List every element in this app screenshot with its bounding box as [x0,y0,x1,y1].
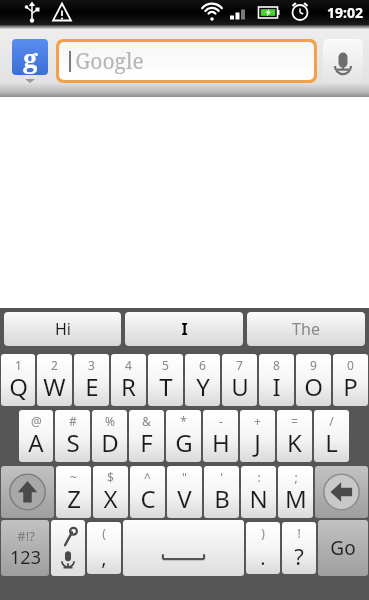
button[interactable]: 0 [333,354,368,406]
staticText: H [212,426,230,459]
staticText: Y [196,370,210,403]
button[interactable]: : [241,466,276,518]
staticText: ; [294,469,298,485]
staticText: : [257,469,261,485]
staticText: G [175,426,193,459]
button[interactable]: * [166,410,201,462]
button[interactable]: % [92,410,127,462]
staticText: A [28,426,44,459]
staticText: 3 [88,357,95,373]
button[interactable]: - [203,410,238,462]
staticText: #!? [17,527,35,545]
button[interactable]: ; [278,466,313,518]
button[interactable]: 4 [111,354,146,406]
button[interactable]: 8 [259,354,294,406]
button[interactable]: 9 [296,354,331,406]
staticText: P [343,370,358,403]
staticText: I [272,370,281,403]
button[interactable]: Voice search [323,39,363,83]
staticText: R [121,370,136,403]
staticText: M [285,482,307,515]
staticText: Q [9,370,28,403]
button[interactable]: Settings and voice input [51,520,85,576]
staticText: S [66,426,80,459]
staticText: I [181,318,188,340]
button[interactable]: ( [87,522,121,574]
staticText: N [249,482,268,515]
staticText: 8 [273,357,280,373]
button[interactable]: & [129,410,164,462]
button[interactable]: Search provider Google [6,25,54,97]
staticText: & [142,413,151,429]
staticText: * [180,413,187,429]
staticText: @ [31,413,42,429]
button[interactable]: Google [59,42,314,80]
button[interactable]: ~ [56,466,91,518]
staticText: 0 [347,357,354,373]
staticText: T [159,370,173,403]
button[interactable]: 2 [37,354,72,406]
button[interactable]: ' [204,466,239,518]
button[interactable]: Hi [4,312,121,346]
staticText: , [101,544,107,571]
button[interactable]: @ [19,410,53,462]
staticText: ^ [144,469,151,485]
staticText: 7 [236,357,243,373]
staticText: 19:02 [327,3,363,22]
staticText: + [254,413,261,429]
button[interactable]: Shift [1,466,54,518]
button[interactable]: ^ [130,466,165,518]
staticText: Z [67,482,81,515]
staticText: K [287,426,302,459]
staticText: 2 [51,357,58,373]
staticText: ! [297,525,301,541]
staticText: U [231,370,249,403]
button[interactable]: 1 [1,354,35,406]
button[interactable]: " [167,466,202,518]
button[interactable]: 3 [74,354,109,406]
button[interactable]: $ [93,466,128,518]
button[interactable]: + [240,410,275,462]
button[interactable]: #!? [1,520,49,576]
staticText: X [103,482,118,515]
button[interactable]: ! [282,522,316,574]
button[interactable]: Go [318,520,368,576]
button[interactable]: I [125,312,243,346]
staticText: . [260,544,266,571]
button[interactable]: # [55,410,90,462]
staticText: B [214,482,230,515]
staticText: $ [107,469,114,485]
staticText: The [292,318,320,340]
staticText: F [140,426,153,459]
button[interactable]: ) [246,522,280,574]
staticText: W [43,370,66,403]
button[interactable]: = [277,410,312,462]
staticText: J [254,426,261,459]
button[interactable]: / [314,410,349,462]
staticText: = [291,413,298,429]
button[interactable]: 7 [222,354,257,406]
button[interactable]: Backspace [315,466,368,518]
staticText: 9 [310,357,317,373]
staticText: E [85,370,99,403]
staticText: # [69,413,77,429]
staticText: ? [294,541,304,571]
staticText: ~ [70,469,77,485]
staticText: ' [220,469,223,485]
staticText: L [325,426,338,459]
button[interactable]: The [247,312,365,346]
staticText: / [329,413,334,429]
staticText: % [105,413,115,429]
staticText: ) [261,525,265,541]
staticText: 4 [125,357,132,373]
staticText: 123 [10,545,41,570]
button[interactable]: Space [123,520,244,576]
staticText: C [140,482,156,515]
staticText: g [23,40,38,75]
button[interactable]: 5 [148,354,183,406]
staticText: O [304,370,323,403]
staticText: 5 [162,357,169,373]
button[interactable]: 6 [185,354,220,406]
staticText: Hi [55,318,71,340]
staticText: Go [330,535,356,561]
